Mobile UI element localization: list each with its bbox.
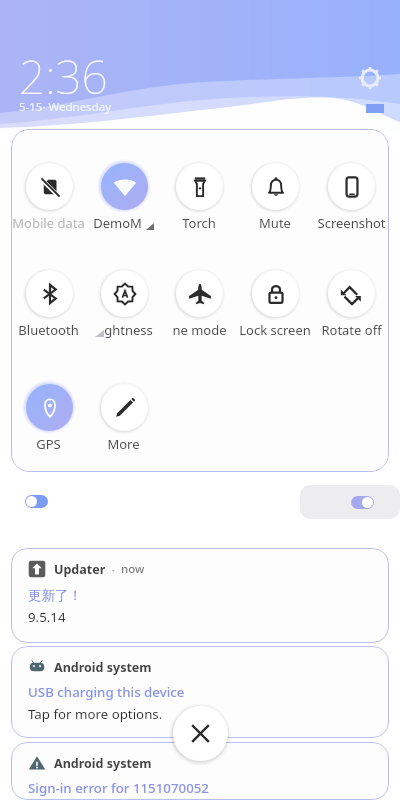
button[interactable]: DemoM [86,159,161,232]
button[interactable]: Clear all notifications [173,706,228,761]
staticText: Mute [259,214,291,232]
staticText: 更新了！ [28,587,82,604]
button[interactable]: Brightness slider [300,485,400,519]
staticText: 2:36 [19,45,108,108]
button[interactable]: ghtness [86,266,161,339]
staticText: Bluetooth [18,321,79,339]
staticText: More [107,435,140,453]
staticText: Updater [54,561,106,578]
button[interactable]: ne mode [161,266,237,339]
button[interactable]: Android system [11,646,389,738]
button[interactable]: Mobile data [11,159,86,232]
staticText: Rotate off [321,321,382,339]
staticText: Torch [182,214,216,232]
staticText: DemoM [93,214,142,232]
button[interactable]: More [86,380,161,453]
staticText: Android system [54,659,152,676]
button[interactable]: Bluetooth [11,266,86,339]
button[interactable]: GPS [11,380,86,453]
staticText: Android system [54,755,152,772]
staticText: · [106,562,121,577]
staticText: now [121,561,145,577]
staticText: ne mode [172,321,227,339]
button[interactable]: Settings [359,67,381,89]
button[interactable]: Rotate off [313,266,389,339]
staticText: Sign-in error for 1151070052 [28,779,209,797]
button[interactable]: Mute [237,159,313,232]
button[interactable]: Screenshot [313,159,389,232]
staticText: ghtness [104,321,153,339]
button[interactable]: Android system [11,742,389,800]
button[interactable]: Updater [11,548,389,643]
button[interactable]: Toggle [25,495,48,508]
staticText: Tap for more options. [28,705,163,723]
staticText: Mobile data [12,214,85,232]
staticText: 9.5.14 [28,608,66,626]
button[interactable]: Lock screen [237,266,313,339]
button[interactable]: Auto brightness [351,496,374,509]
staticText: GPS [36,435,61,453]
button[interactable]: Torch [161,159,237,232]
staticText: USB charging this device [28,683,185,701]
staticText: Screenshot [317,214,386,232]
staticText: Lock screen [239,321,311,339]
staticText: 5-15· Wednesday [19,99,112,115]
